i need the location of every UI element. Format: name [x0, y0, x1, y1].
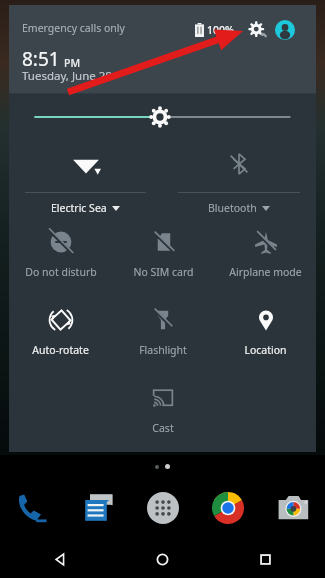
button[interactable]: Camera: [260, 482, 325, 534]
staticText: PM: [64, 56, 81, 70]
button[interactable]: Location: [214, 295, 316, 373]
button[interactable]: Do not disturb: [9, 217, 112, 295]
button[interactable]: Flashlight: [112, 295, 214, 373]
button[interactable]: Messages: [65, 482, 130, 534]
staticText: 100%: [207, 23, 234, 37]
button[interactable]: Settings: [245, 17, 271, 43]
button[interactable]: Auto-rotate: [9, 295, 112, 373]
button[interactable]: Phone: [0, 482, 65, 534]
staticText: Auto-rotate: [32, 343, 89, 357]
button[interactable]: Brightness: [9, 94, 316, 139]
button[interactable]: Back: [41, 541, 77, 577]
staticText: Cast: [152, 421, 174, 435]
staticText: Electric Sea: [51, 201, 107, 215]
staticText: No SIM card: [133, 265, 194, 279]
button[interactable]: Cast: [112, 373, 214, 451]
button[interactable]: Recents: [247, 541, 283, 577]
button[interactable]: Home: [144, 541, 180, 577]
button[interactable]: Switch user: [274, 19, 296, 41]
staticText: Airplane mode: [229, 265, 302, 279]
staticText: Tuesday, June 28: [22, 68, 112, 84]
button[interactable]: No SIM card: [112, 217, 214, 295]
staticText: Emergency calls only: [22, 21, 125, 35]
button[interactable]: Electric Sea: [9, 139, 162, 217]
staticText: Location: [244, 343, 287, 357]
button[interactable]: Chrome: [195, 482, 260, 534]
button[interactable]: All apps: [130, 482, 195, 534]
staticText: Do not disturb: [25, 265, 97, 279]
button[interactable]: Bluetooth: [162, 139, 316, 217]
staticText: Flashlight: [139, 343, 187, 357]
staticText: Bluetooth: [208, 201, 257, 215]
staticText: 8:51: [22, 46, 60, 72]
button[interactable]: Airplane mode: [214, 217, 316, 295]
